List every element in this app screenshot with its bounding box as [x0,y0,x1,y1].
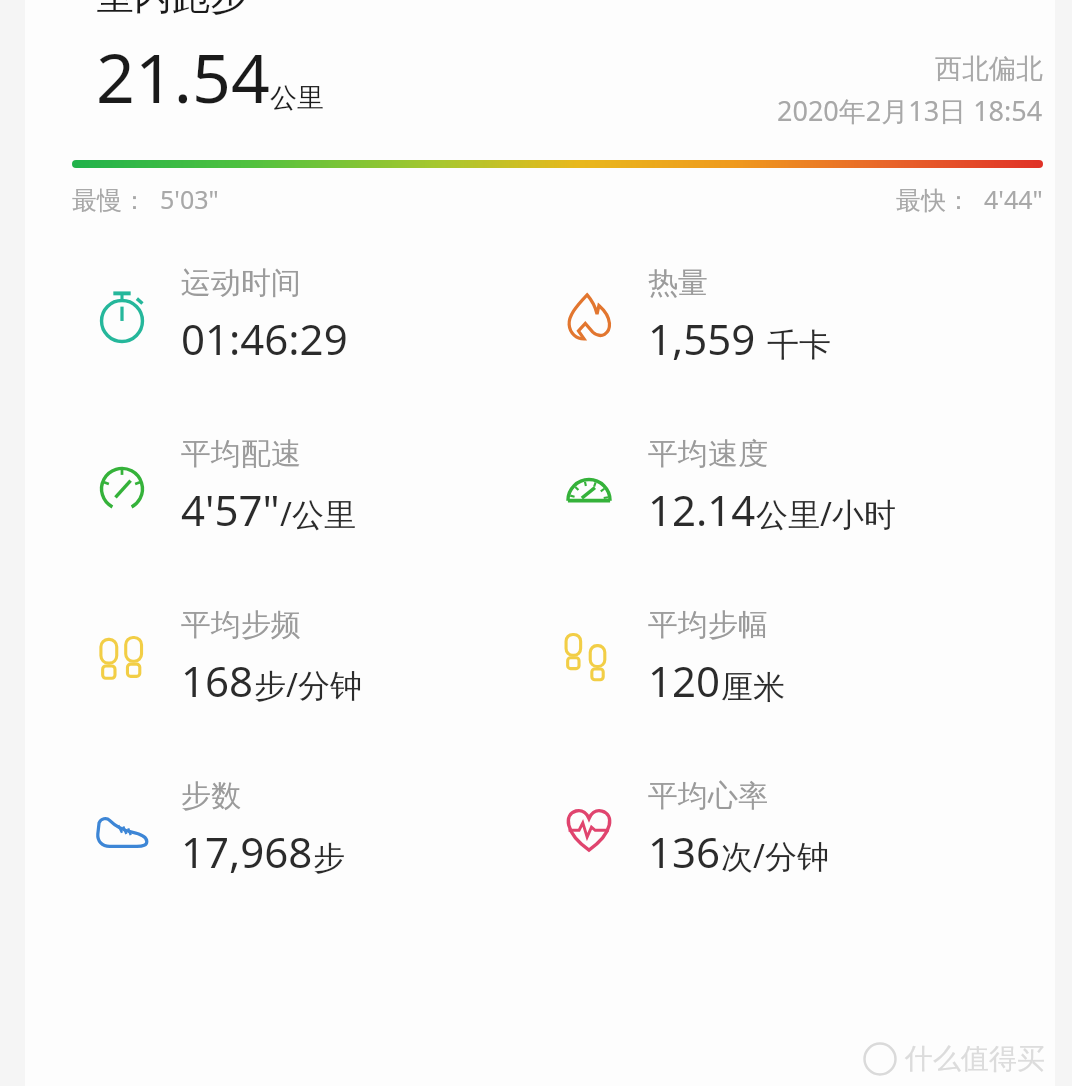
button[interactable]: 平均步频 [25,606,540,709]
staticText: 最慢： 5'03" [72,182,219,216]
staticText: 最快： 4'44" [896,182,1043,216]
staticText: 平均心率 [648,777,768,815]
staticText: 12.14 [648,481,756,538]
staticText: 千卡 [767,325,831,365]
other: 平均心率 [552,792,626,866]
staticText: 公里 [270,81,324,115]
other: 步数 [85,792,159,866]
other: 平均速度 [552,450,626,524]
staticText: 平均步幅 [648,606,768,644]
button[interactable]: 平均心率 [540,777,1055,880]
other: 运动时间 [85,279,159,353]
staticText: 西北偏北 [935,52,1043,86]
staticText: 次/分钟 [721,834,829,878]
button[interactable]: 热量 [540,264,1055,367]
staticText: 步/分钟 [254,663,362,707]
staticText: 步数 [181,777,241,815]
other: 热量 [552,279,626,353]
staticText: 平均配速 [181,435,301,473]
staticText: 平均步频 [181,606,301,644]
staticText: 平均速度 [648,435,768,473]
staticText: 1,559 [648,310,767,367]
staticText: /公里 [280,492,356,536]
other: 平均步幅 [552,621,626,695]
other: 平均配速 [85,450,159,524]
staticText: 什么值得买 [905,1041,1045,1076]
other: 平均步频 [85,621,159,695]
button[interactable]: 运动时间 [25,264,540,367]
staticText: 公里/小时 [756,492,896,536]
staticText: 步 [313,838,345,878]
staticText: 168 [181,652,254,709]
button[interactable]: 平均步幅 [540,606,1055,709]
button[interactable]: 步数 [25,777,540,880]
staticText: 运动时间 [181,264,301,302]
staticText: 热量 [648,264,708,302]
staticText: 17,968 [181,823,313,880]
staticText: 2020年2月13日 18:54 [777,92,1043,129]
staticText: 136 [648,823,721,880]
staticText: 01:46:29 [181,310,348,367]
staticText: 120 [648,652,721,709]
button[interactable]: 平均配速 [25,435,540,538]
staticText: 21.54 [96,30,270,123]
staticText: 4'57" [181,481,280,538]
staticText: 室内跑步 [96,0,248,20]
button[interactable]: 平均速度 [540,435,1055,538]
staticText: 厘米 [721,667,785,707]
